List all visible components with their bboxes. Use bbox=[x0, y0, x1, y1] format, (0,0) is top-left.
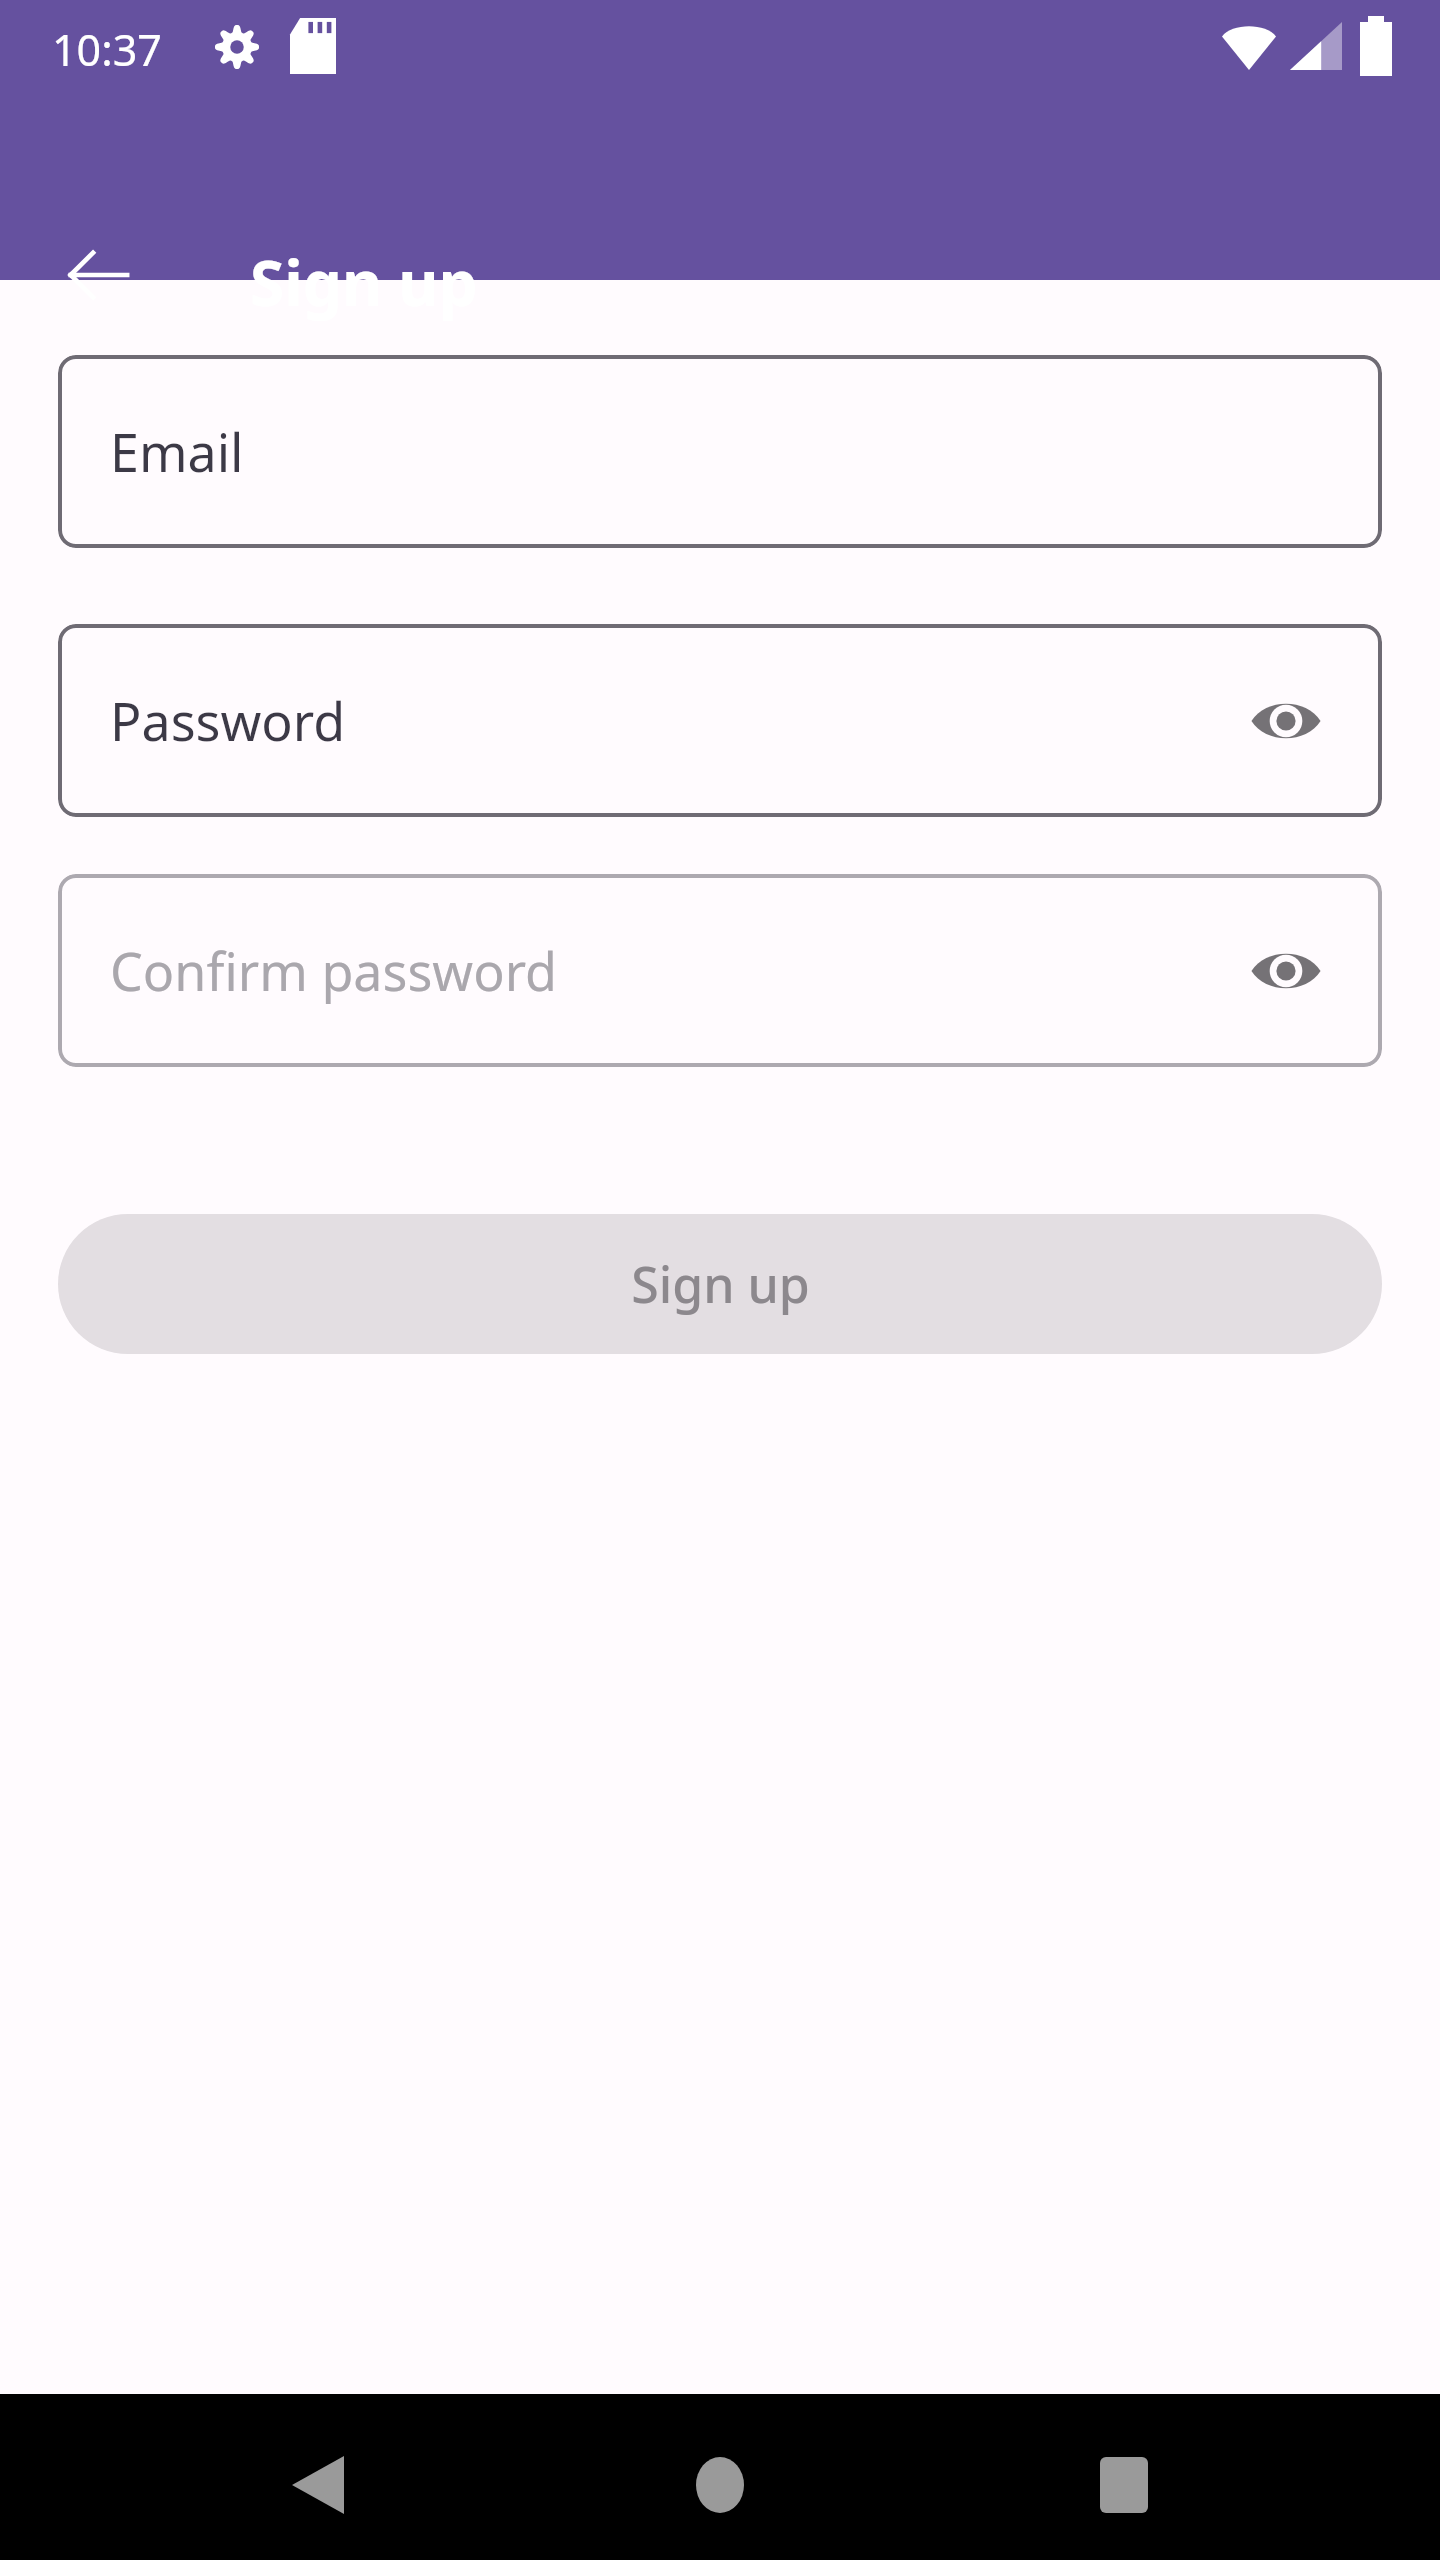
button[interactable]: Show password bbox=[1232, 917, 1340, 1025]
button[interactable]: Password bbox=[58, 624, 1382, 817]
button[interactable]: Recent apps bbox=[1056, 2417, 1192, 2553]
staticText: Email bbox=[110, 416, 244, 487]
button[interactable]: Home bbox=[652, 2417, 788, 2553]
staticText: Confirm password bbox=[110, 935, 558, 1006]
button[interactable]: Email bbox=[58, 355, 1382, 548]
button[interactable]: Back bbox=[250, 2417, 386, 2553]
button[interactable]: Show password bbox=[1232, 667, 1340, 775]
staticText: 10:37 bbox=[52, 20, 162, 79]
button[interactable]: Sign up bbox=[58, 1214, 1382, 1354]
staticText: Password bbox=[110, 685, 346, 756]
button[interactable]: Confirm password bbox=[58, 874, 1382, 1067]
button[interactable]: Back bbox=[26, 203, 170, 347]
staticText: Sign up bbox=[250, 240, 478, 324]
staticText: Sign up bbox=[631, 1250, 810, 1318]
